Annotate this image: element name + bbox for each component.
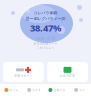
button[interactable]: さがす: [23, 84, 46, 96]
staticText: マイ: [79, 88, 85, 92]
button[interactable]: お金の管理: [47, 62, 88, 82]
staticText: お金の管理: [60, 74, 75, 77]
button[interactable]: マイ: [68, 84, 91, 96]
staticText: 前回比 +2.3%: [36, 37, 55, 40]
staticText: 翌ー40レグパラメーJD: [25, 16, 65, 21]
button[interactable]: お知らせ: [45, 84, 68, 96]
staticText: さがす: [32, 88, 41, 92]
staticText: 38.47%: [30, 22, 61, 34]
staticText: 医療サポート: [14, 74, 32, 77]
staticText: ごきげんよう: [36, 46, 54, 49]
button[interactable]: 医療サポート: [3, 62, 44, 82]
staticText: ホーム: [9, 88, 18, 92]
staticText: お知らせ: [53, 88, 65, 92]
staticText: コレパラ体験: [33, 10, 57, 15]
button[interactable]: ホーム: [0, 84, 23, 96]
staticText: 本日の記録データ: [33, 42, 57, 45]
